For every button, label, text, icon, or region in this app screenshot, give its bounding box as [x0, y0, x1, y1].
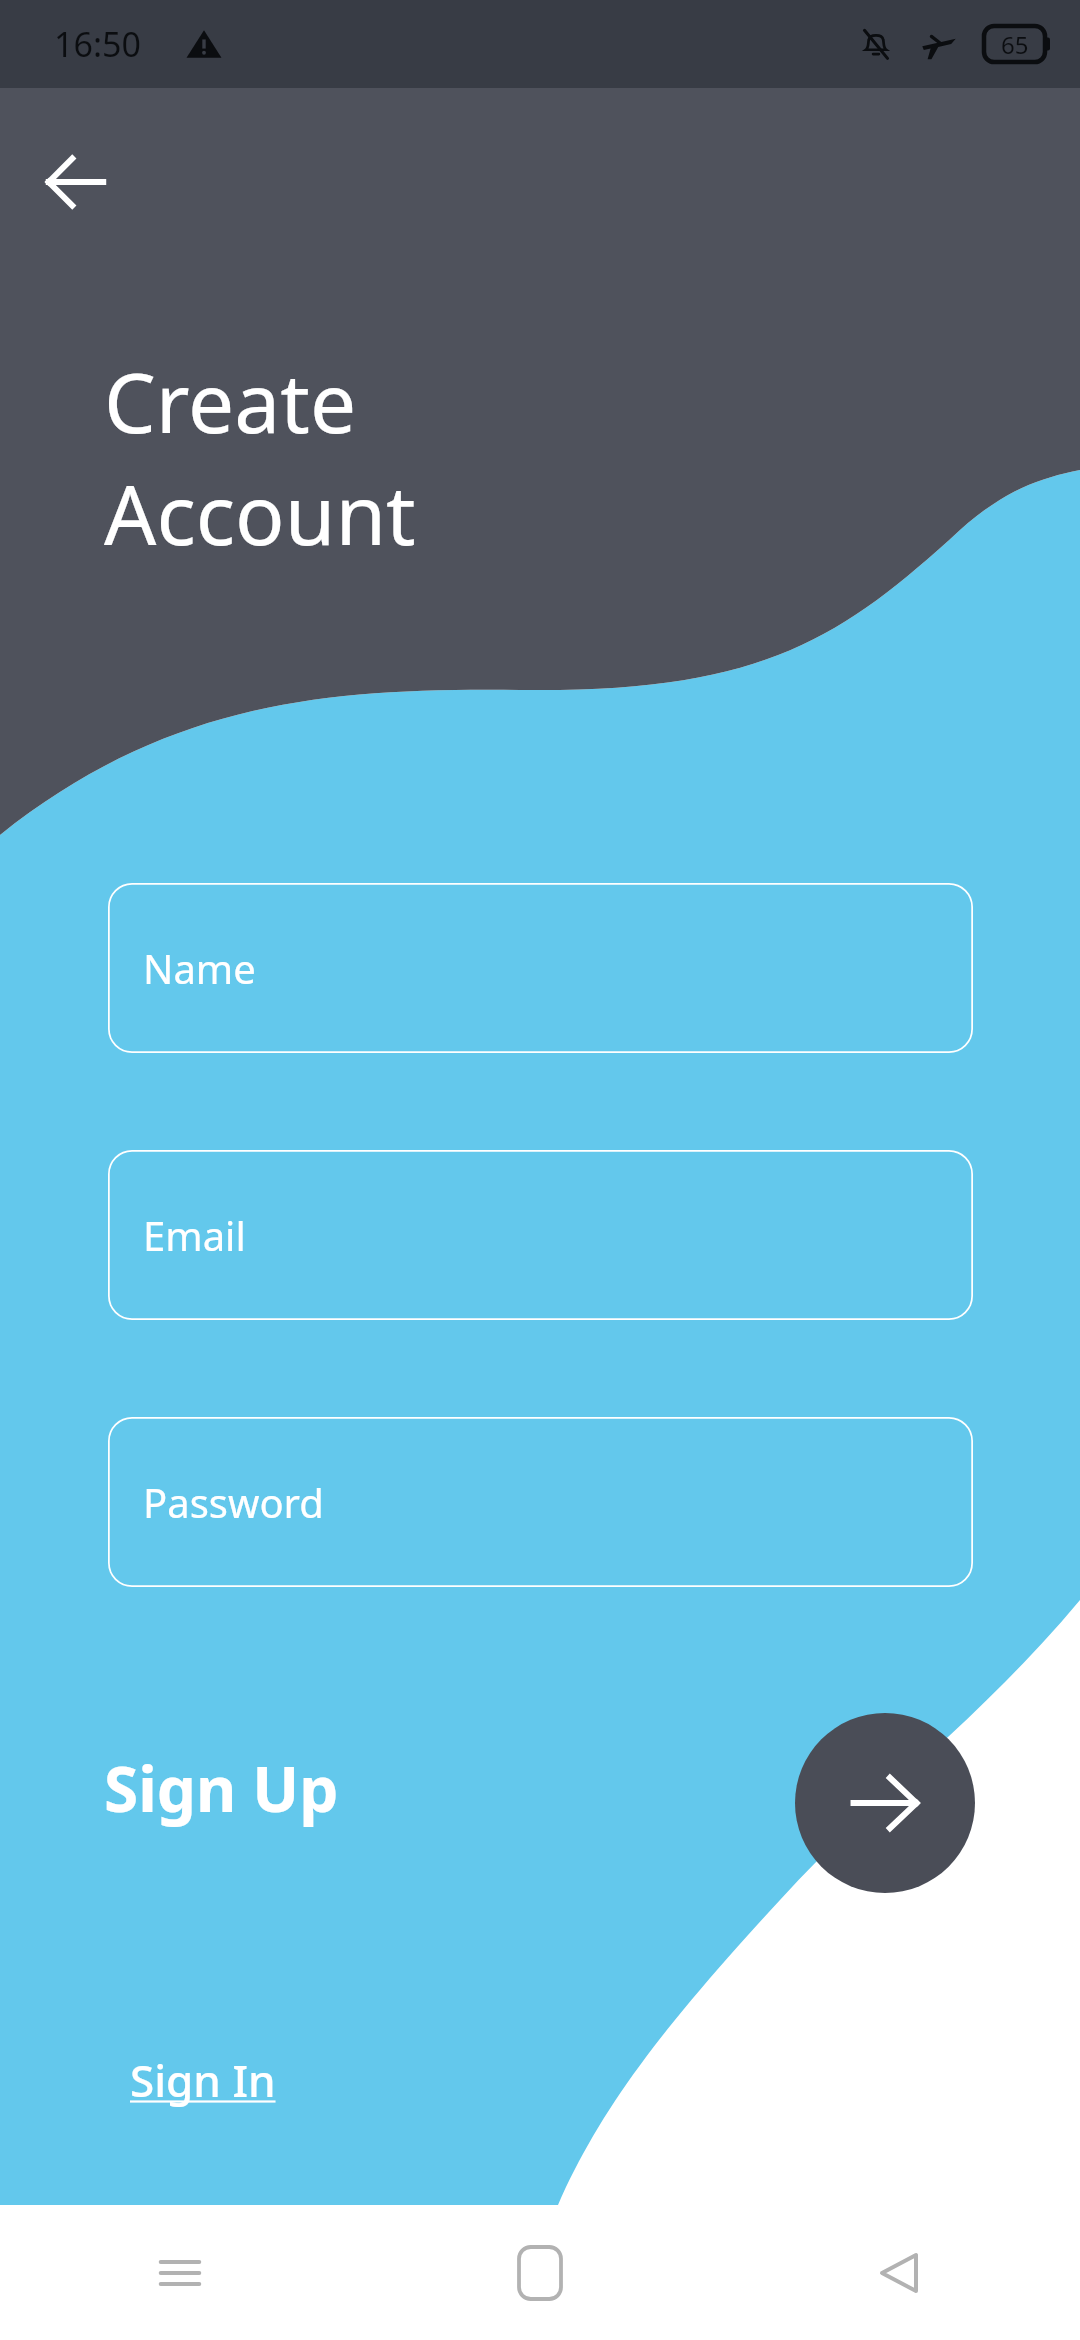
staticText: Sign In — [130, 2050, 276, 2110]
staticText: 65 — [1001, 28, 1029, 61]
button[interactable]: Name — [108, 883, 973, 1053]
staticText: Name — [143, 941, 256, 995]
button[interactable]: Sign Up — [96, 1740, 347, 1836]
button[interactable]: Back — [24, 130, 128, 234]
staticText: Create — [104, 345, 357, 457]
staticText: Sign Up — [104, 1746, 339, 1830]
button[interactable]: Password — [108, 1417, 973, 1587]
staticText: Password — [143, 1475, 324, 1529]
button[interactable]: Sign In — [118, 2042, 288, 2118]
button[interactable]: Continue — [795, 1713, 975, 1893]
staticText: Email — [143, 1208, 246, 1262]
staticText: 16:50 — [54, 21, 141, 67]
staticText: Account — [104, 457, 416, 569]
button[interactable]: Home — [360, 2205, 720, 2340]
button[interactable]: Recent apps — [0, 2205, 360, 2340]
button[interactable]: Back — [720, 2205, 1080, 2340]
button[interactable]: Email — [108, 1150, 973, 1320]
